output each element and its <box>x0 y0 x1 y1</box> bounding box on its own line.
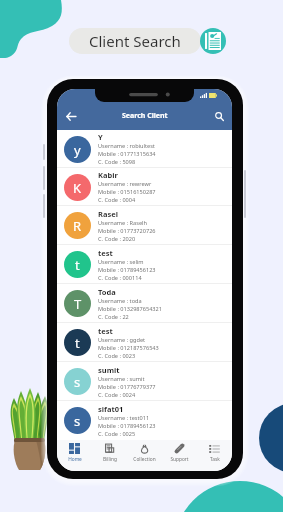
button[interactable]: s <box>57 362 232 401</box>
button[interactable]: R <box>57 206 232 245</box>
button[interactable]: T <box>57 284 232 323</box>
staticText: t <box>75 334 80 352</box>
staticText: Username : Raselh <box>98 219 147 227</box>
staticText: s <box>74 373 81 391</box>
button[interactable]: Task <box>197 443 232 468</box>
staticText: Kabir <box>98 170 118 180</box>
staticText: C. Code : 5098 <box>98 158 136 166</box>
staticText: Client Search <box>89 31 181 51</box>
staticText: C. Code : 2020 <box>98 235 136 243</box>
staticText: Collection <box>133 456 156 463</box>
staticText: Username : robiultest <box>98 142 155 150</box>
button[interactable]: y <box>57 130 232 168</box>
button[interactable]: s <box>57 401 232 440</box>
staticText: Billing <box>103 456 117 463</box>
staticText: Mobile : 01773720726 <box>98 227 156 235</box>
staticText: sumit <box>98 365 120 375</box>
staticText: C. Code : 0004 <box>98 196 136 204</box>
staticText: Username : ggdet <box>98 336 146 344</box>
staticText: test <box>98 248 113 258</box>
staticText: C. Code : 0025 <box>98 430 136 438</box>
staticText: test <box>98 326 113 336</box>
staticText: Mobile : 01771315634 <box>98 150 156 158</box>
button[interactable]: Support <box>162 443 197 468</box>
staticText: Support <box>170 456 189 463</box>
staticText: t <box>75 256 80 274</box>
staticText: Search Client <box>122 111 168 121</box>
staticText: T <box>74 295 82 313</box>
staticText: R <box>73 217 82 235</box>
staticText: C. Code : 000114 <box>98 274 142 282</box>
staticText: Mobile : 01516150287 <box>98 188 156 196</box>
button[interactable]: Client Search <box>200 28 226 54</box>
staticText: sifat01 <box>98 404 124 414</box>
button[interactable]: t <box>57 245 232 284</box>
staticText: C. Code : 0023 <box>98 352 136 360</box>
button[interactable]: Client Search <box>69 28 201 54</box>
staticText: Toda <box>98 287 116 297</box>
staticText: C. Code : 22 <box>98 313 129 321</box>
staticText: Mobile : 0132987654321 <box>98 305 162 313</box>
staticText: C. Code : 0024 <box>98 391 136 399</box>
staticText: Username : selim <box>98 258 144 266</box>
staticText: Mobile : 012187576543 <box>98 344 159 352</box>
staticText: Rasel <box>98 209 118 219</box>
staticText: Username : sumit <box>98 375 145 383</box>
staticText: Mobile : 01789456123 <box>98 266 156 274</box>
button[interactable]: Collection <box>127 443 162 468</box>
staticText: K <box>73 179 82 197</box>
staticText: s <box>74 412 81 430</box>
staticText: Username : test011 <box>98 414 150 422</box>
staticText: Task <box>210 456 220 463</box>
staticText: Mobile : 01776779377 <box>98 383 156 391</box>
button[interactable]: Billing <box>92 443 127 468</box>
button[interactable]: Search <box>210 107 228 125</box>
staticText: Username : rewrewr <box>98 180 152 188</box>
button[interactable]: t <box>57 323 232 362</box>
button[interactable]: Home <box>57 443 92 468</box>
staticText: y <box>74 141 81 159</box>
staticText: Y <box>98 132 103 142</box>
staticText: Username : toda <box>98 297 142 305</box>
staticText: Home <box>68 456 82 463</box>
button[interactable]: Back <box>62 107 80 125</box>
staticText: Mobile : 01789456123 <box>98 422 156 430</box>
button[interactable]: K <box>57 168 232 206</box>
